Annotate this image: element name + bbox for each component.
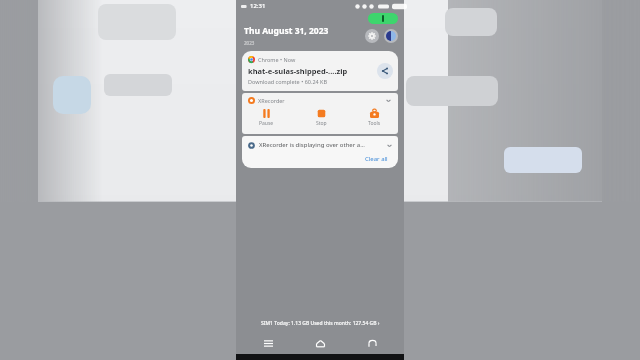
button[interactable]: Battery charging (368, 13, 398, 24)
staticText: 2023 (244, 40, 255, 46)
button[interactable]: Chrome • Now (242, 51, 398, 91)
staticText: Chrome • Now (258, 56, 296, 63)
button[interactable]: Share (377, 63, 393, 79)
button[interactable]: Stop (311, 108, 332, 128)
button[interactable]: Settings (365, 29, 379, 43)
staticText: XRecorder is displaying over other a... (259, 141, 383, 149)
button[interactable]: XRecorder (242, 93, 398, 134)
staticText: XRecorder (258, 97, 285, 104)
staticText: Stop (316, 120, 327, 127)
staticText: 12:31 (250, 2, 266, 10)
button[interactable]: Home (300, 332, 340, 354)
staticText: Download complete • 60.24 KB (248, 78, 328, 85)
button[interactable]: Back (352, 332, 392, 354)
staticText: Thu August 31, 2023 (244, 25, 329, 37)
button[interactable]: Clear all (362, 154, 391, 164)
button[interactable]: Recent apps (248, 332, 288, 354)
button[interactable]: User profile (384, 29, 398, 43)
staticText: khat-e-sulas-shipped-....zip (248, 66, 348, 76)
staticText: SIM1 Today: 1.13 GB Used this month: 127… (261, 320, 380, 327)
staticText: Clear all (365, 155, 388, 163)
button[interactable]: Tools (363, 108, 386, 128)
staticText: Tools (368, 120, 381, 127)
button[interactable]: XRecorder is displaying over other a... (242, 136, 398, 154)
button[interactable]: Pause (254, 108, 279, 128)
staticText: Pause (259, 120, 274, 127)
